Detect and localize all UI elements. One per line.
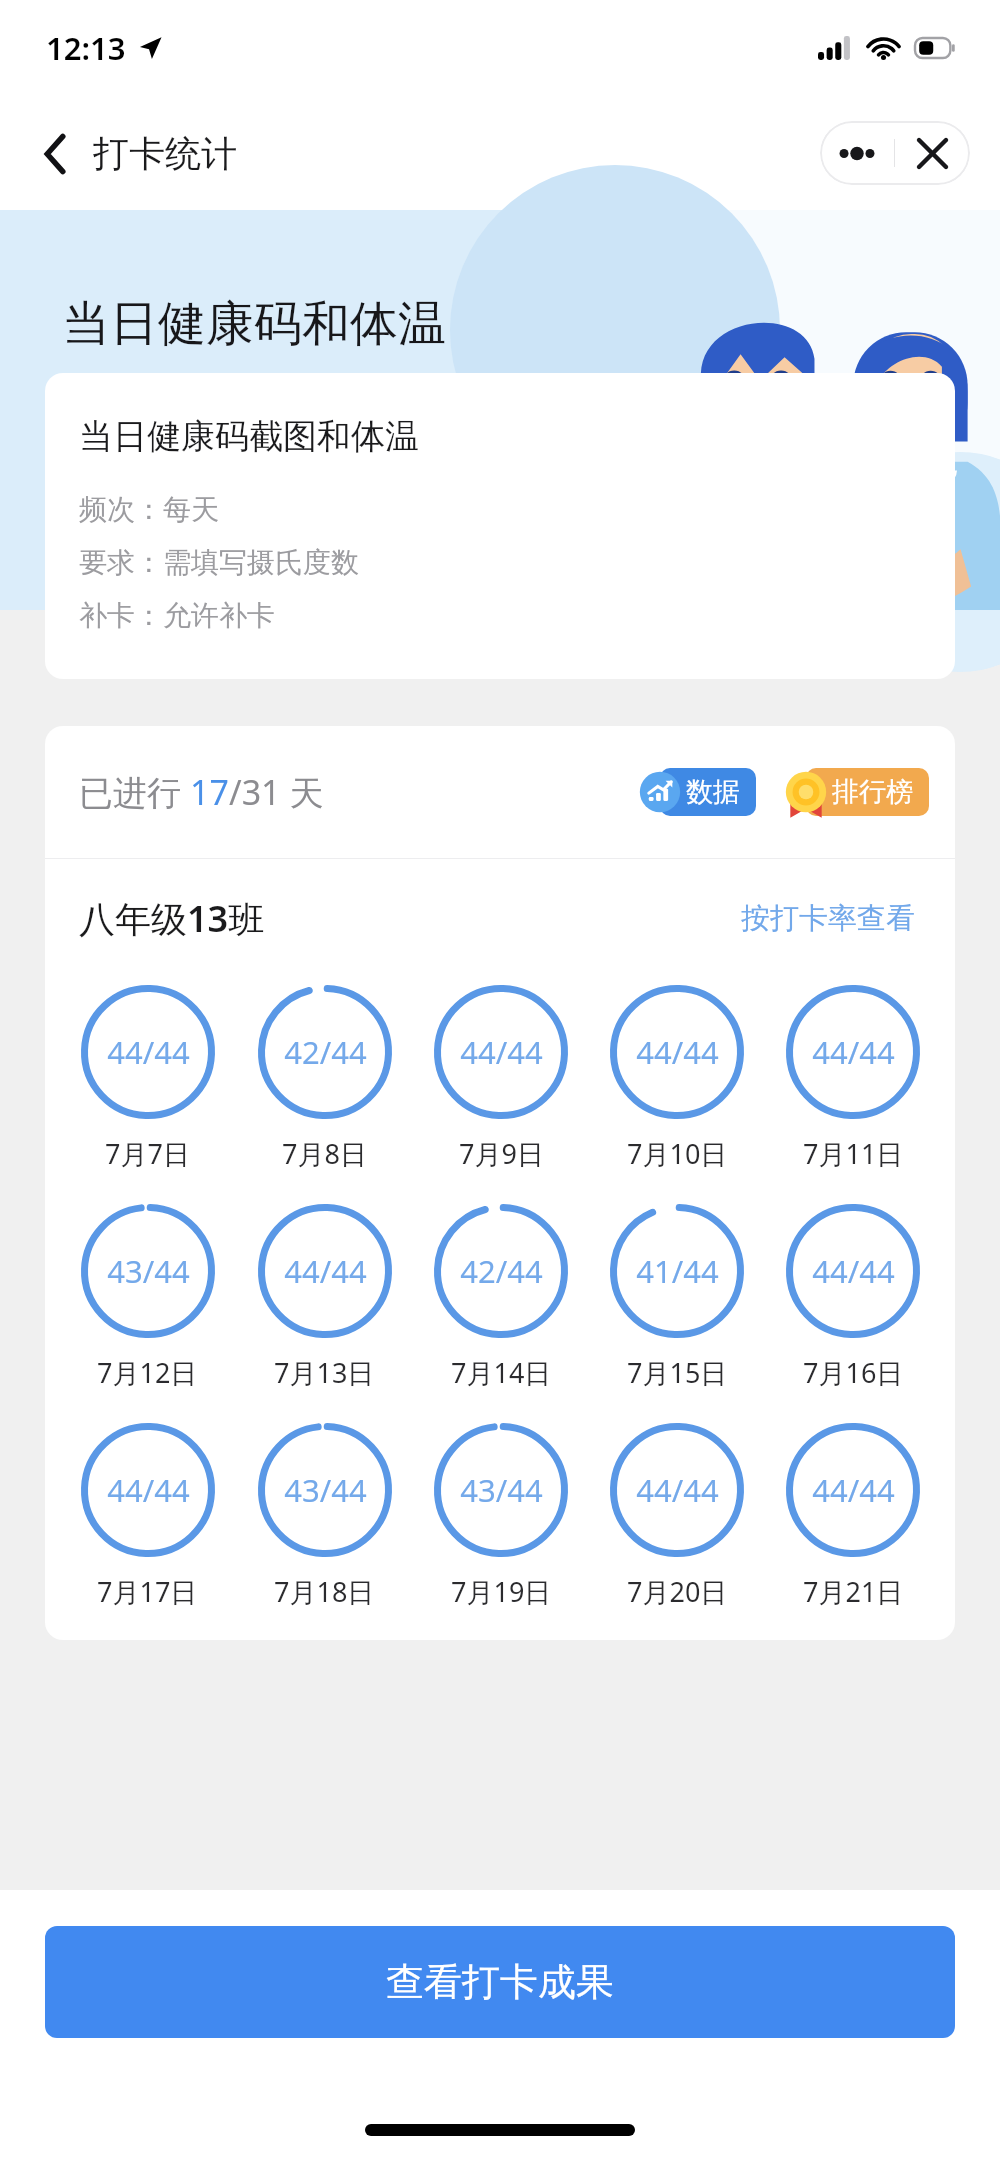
button[interactable]: 43/44 — [59, 1196, 236, 1397]
button[interactable]: 44/44 — [413, 977, 589, 1178]
button[interactable]: 按打卡率查看 — [735, 894, 921, 943]
staticText: 7月19日 — [451, 1573, 552, 1610]
staticText: 17 — [190, 769, 229, 815]
staticText: 44/44 — [812, 1250, 895, 1292]
staticText: 要求：需填写摄氏度数 — [79, 545, 359, 580]
button[interactable]: Back — [30, 121, 251, 186]
button[interactable]: 排行榜 — [778, 763, 929, 821]
staticText: 八年级13班 — [79, 894, 265, 943]
staticText: 当日健康码截图和体温 — [79, 415, 419, 458]
button[interactable]: 44/44 — [236, 1196, 413, 1397]
staticText: 7月9日 — [459, 1135, 544, 1172]
staticText: 43/44 — [107, 1250, 190, 1292]
button[interactable]: 44/44 — [765, 977, 941, 1178]
staticText: 43/44 — [284, 1469, 367, 1511]
button[interactable]: Close — [895, 121, 970, 185]
staticText: 44/44 — [812, 1031, 895, 1073]
staticText: 7月14日 — [451, 1354, 552, 1391]
staticText: 42/44 — [284, 1031, 367, 1073]
staticText: 数据 — [686, 775, 740, 809]
button[interactable]: 44/44 — [589, 977, 765, 1178]
staticText: 补卡：允许补卡 — [79, 598, 275, 633]
staticText: 7月15日 — [627, 1354, 728, 1391]
staticText: 44/44 — [107, 1031, 190, 1073]
staticText: 42/44 — [460, 1250, 543, 1292]
staticText: 频次：每天 — [79, 492, 219, 527]
button[interactable]: 44/44 — [589, 1415, 765, 1616]
staticText: 43/44 — [460, 1469, 543, 1511]
staticText: 打卡统计 — [93, 131, 237, 176]
staticText: 已进行 — [79, 769, 190, 815]
button[interactable]: 数据 — [632, 763, 756, 821]
staticText: 7月13日 — [274, 1354, 375, 1391]
staticText: 44/44 — [812, 1469, 895, 1511]
button[interactable]: 44/44 — [59, 977, 236, 1178]
staticText: 12:13 — [46, 27, 126, 69]
staticText: 7月20日 — [627, 1573, 728, 1610]
staticText: /31 天 — [229, 769, 324, 815]
staticText: 7月16日 — [803, 1354, 904, 1391]
button[interactable]: 42/44 — [236, 977, 413, 1178]
button[interactable]: 43/44 — [236, 1415, 413, 1616]
staticText: 7月17日 — [97, 1573, 198, 1610]
button[interactable]: 41/44 — [589, 1196, 765, 1397]
staticText: 7月10日 — [627, 1135, 728, 1172]
staticText: 44/44 — [636, 1469, 719, 1511]
staticText: 44/44 — [107, 1469, 190, 1511]
staticText: 7月7日 — [105, 1135, 190, 1172]
other: Back — [44, 134, 67, 174]
staticText: 按打卡率查看 — [741, 900, 915, 937]
staticText: 44/44 — [460, 1031, 543, 1073]
staticText: 7月8日 — [282, 1135, 367, 1172]
button[interactable]: 44/44 — [765, 1415, 941, 1616]
button[interactable]: 42/44 — [413, 1196, 589, 1397]
staticText: 排行榜 — [832, 775, 913, 809]
staticText: 7月12日 — [97, 1354, 198, 1391]
button[interactable]: 43/44 — [413, 1415, 589, 1616]
staticText: 41/44 — [636, 1250, 719, 1292]
staticText: 44/44 — [284, 1250, 367, 1292]
button[interactable]: More — [820, 121, 894, 185]
button[interactable]: 44/44 — [59, 1415, 236, 1616]
staticText: 44/44 — [636, 1031, 719, 1073]
staticText: 当日健康码和体温 — [62, 294, 446, 354]
button[interactable]: 查看打卡成果 — [45, 1926, 955, 2038]
button[interactable]: 44/44 — [765, 1196, 941, 1397]
staticText: 7月11日 — [803, 1135, 904, 1172]
staticText: 查看打卡成果 — [386, 1958, 614, 2006]
staticText: 7月18日 — [274, 1573, 375, 1610]
staticText: 7月21日 — [803, 1573, 904, 1610]
